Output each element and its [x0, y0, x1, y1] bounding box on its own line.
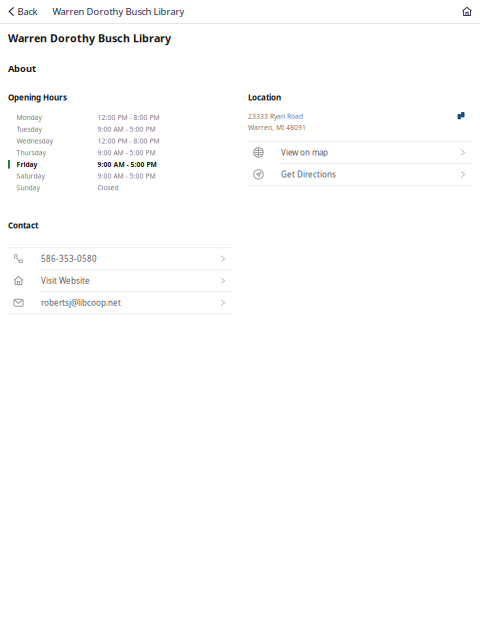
- button[interactable]: Back: [0, 0, 43, 23]
- staticText: robertsj@libcoop.net: [41, 297, 121, 308]
- staticText: Visit Website: [41, 275, 90, 286]
- button[interactable]: Visit Website: [8, 270, 232, 291]
- staticText: 9:00 AM - 5:00 PM: [97, 125, 155, 134]
- staticText: Saturday: [16, 172, 44, 180]
- button[interactable]: View on map: [248, 142, 472, 163]
- staticText: 586-353-0580: [41, 253, 97, 264]
- staticText: 12:00 PM - 8:00 PM: [97, 113, 159, 122]
- staticText: About: [8, 62, 36, 75]
- staticText: Tuesday: [16, 125, 41, 134]
- staticText: Monday: [16, 113, 41, 122]
- staticText: Thursday: [16, 148, 45, 157]
- button[interactable]: Get Directions: [248, 164, 472, 185]
- staticText: Warren, MI 48091: [248, 123, 306, 132]
- button[interactable]: 586-353-0580: [8, 248, 232, 269]
- staticText: Get Directions: [281, 169, 336, 180]
- staticText: Sunday: [16, 183, 39, 192]
- staticText: Opening Hours: [8, 92, 67, 103]
- staticText: 9:00 AM - 5:00 PM: [97, 172, 155, 180]
- staticText: Friday: [16, 160, 37, 169]
- button[interactable]: Home: [454, 0, 480, 23]
- staticText: Contact: [8, 220, 38, 231]
- staticText: Warren Dorothy Busch Library: [8, 31, 171, 45]
- staticText: View on map: [281, 147, 328, 158]
- staticText: 12:00 PM - 8:00 PM: [97, 136, 159, 145]
- staticText: Wednesday: [16, 136, 52, 145]
- staticText: 9:00 AM - 5:00 PM: [97, 160, 156, 169]
- button[interactable]: robertsj@libcoop.net: [8, 292, 232, 313]
- button[interactable]: Copy address: [453, 112, 472, 126]
- staticText: 23333 Ryan Road: [248, 112, 303, 121]
- staticText: Warren Dorothy Busch Library: [52, 5, 184, 18]
- staticText: Closed: [97, 183, 118, 192]
- staticText: Back: [17, 5, 37, 18]
- staticText: 9:00 AM - 5:00 PM: [97, 148, 155, 157]
- staticText: Location: [248, 92, 281, 103]
